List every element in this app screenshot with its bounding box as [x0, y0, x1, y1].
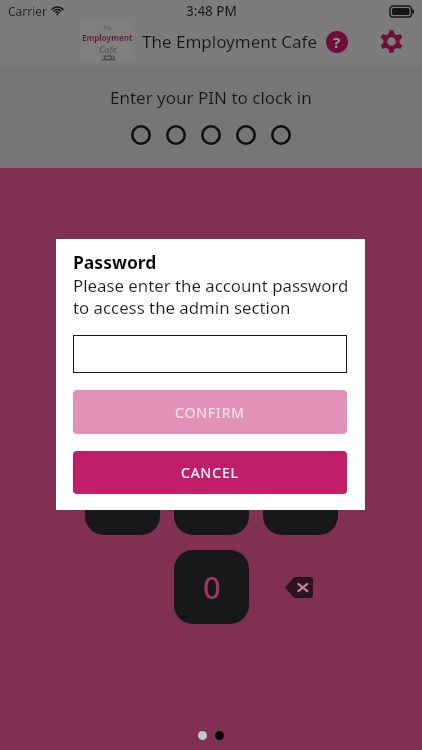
button[interactable]: Settings	[380, 30, 403, 53]
button[interactable]: 6	[263, 372, 338, 446]
button[interactable]: 7	[85, 461, 160, 535]
staticText: CANCEL	[181, 463, 239, 482]
staticText: 7	[114, 477, 132, 519]
button[interactable]	[73, 335, 347, 373]
button[interactable]: 1	[85, 283, 160, 357]
staticText: 4	[114, 388, 132, 430]
staticText: 3:48 PM	[186, 2, 237, 20]
button[interactable]: 0	[174, 550, 249, 624]
button[interactable]: 3	[263, 283, 338, 357]
staticText: 6	[292, 388, 310, 430]
button[interactable]: Help	[326, 31, 348, 53]
button[interactable]: 9	[263, 461, 338, 535]
staticText: 3	[292, 299, 310, 341]
staticText: 9	[292, 477, 310, 519]
button[interactable]: Backspace	[285, 577, 313, 598]
staticText: 1	[114, 299, 132, 341]
staticText: ?	[333, 32, 341, 52]
staticText: Password	[73, 250, 157, 274]
staticText: The	[103, 25, 112, 32]
staticText: Please enter the account password to acc…	[73, 274, 347, 319]
staticText: Enter your PIN to clock in	[110, 86, 312, 109]
staticText: 0	[203, 566, 221, 608]
staticText: 2	[203, 299, 221, 341]
staticText: The Employment Cafe	[142, 30, 318, 53]
button[interactable]: 8	[174, 461, 249, 535]
staticText: Cafe	[99, 43, 117, 55]
button[interactable]: 5	[174, 372, 249, 446]
staticText: 8	[203, 477, 221, 519]
staticText: CONFIRM	[175, 403, 245, 422]
button[interactable]: 2	[174, 283, 249, 357]
button[interactable]: CANCEL	[73, 451, 347, 494]
button[interactable]: 4	[85, 372, 160, 446]
staticText: Carrier	[8, 3, 48, 19]
staticText: Employment	[82, 32, 133, 43]
staticText: 5	[203, 388, 221, 430]
button[interactable]: CONFIRM	[73, 390, 347, 434]
